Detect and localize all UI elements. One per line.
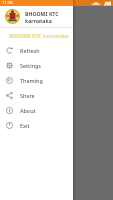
other: Share [6,92,13,99]
staticText: Exit [20,122,30,129]
button[interactable]: About [0,103,73,118]
button[interactable]: Theming [0,73,73,88]
other: Theming [6,77,13,84]
button[interactable]: Refresh [0,43,73,58]
other: Exit [6,122,13,129]
staticText: BHOOMI KTC [25,10,59,17]
button[interactable]: BHOOMI KTC [0,6,73,27]
staticText: Refresh [20,47,40,54]
staticText: karnataka [25,17,52,24]
button[interactable]: Share [0,88,73,103]
staticText: Theming [20,77,43,84]
staticText: 11:35 [2,0,13,6]
button[interactable]: Settings [0,58,73,73]
button[interactable]: Exit [0,118,73,133]
staticText: Settings [20,62,41,69]
other: About [6,107,13,114]
other: Refresh [6,47,13,54]
other: Settings [6,62,13,69]
staticText: About [20,107,36,114]
staticText: Share [20,92,35,99]
staticText: BHOOMI KTC karnataka [9,33,69,40]
